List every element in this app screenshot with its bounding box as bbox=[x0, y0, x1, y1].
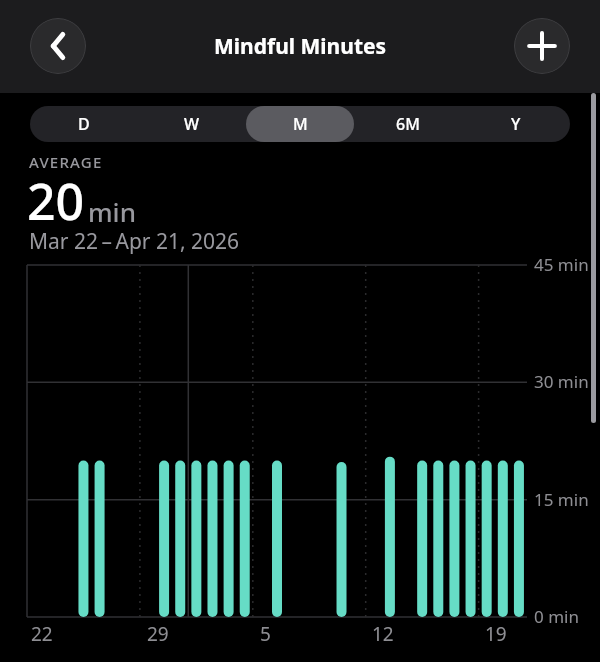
staticText: M bbox=[293, 113, 308, 135]
staticText: 12 bbox=[372, 621, 394, 647]
button[interactable] bbox=[514, 18, 570, 74]
staticText: 45 min bbox=[534, 253, 589, 276]
staticText: 20 bbox=[27, 167, 85, 235]
button[interactable]: Y bbox=[462, 106, 570, 142]
staticText: min bbox=[88, 194, 136, 229]
staticText: Mindful Minutes bbox=[214, 32, 387, 61]
button[interactable]: M bbox=[246, 106, 354, 142]
button[interactable]: D bbox=[30, 106, 138, 142]
staticText: AVERAGE bbox=[29, 152, 103, 172]
button[interactable]: W bbox=[138, 106, 246, 142]
staticText: 0 min bbox=[534, 605, 579, 628]
staticText: 19 bbox=[485, 621, 507, 647]
staticText: W bbox=[184, 113, 200, 135]
button[interactable] bbox=[30, 18, 86, 74]
staticText: 6M bbox=[396, 113, 420, 135]
staticText: 22 bbox=[31, 621, 53, 647]
staticText: 15 min bbox=[534, 488, 589, 511]
staticText: 30 min bbox=[534, 370, 589, 393]
staticText: 29 bbox=[147, 621, 169, 647]
staticText: Mar 22 – Apr 21, 2026 bbox=[29, 227, 240, 256]
staticText: 5 bbox=[260, 621, 271, 647]
staticText: D bbox=[78, 113, 90, 135]
button[interactable]: 6M bbox=[354, 106, 462, 142]
staticText: Y bbox=[511, 113, 521, 135]
